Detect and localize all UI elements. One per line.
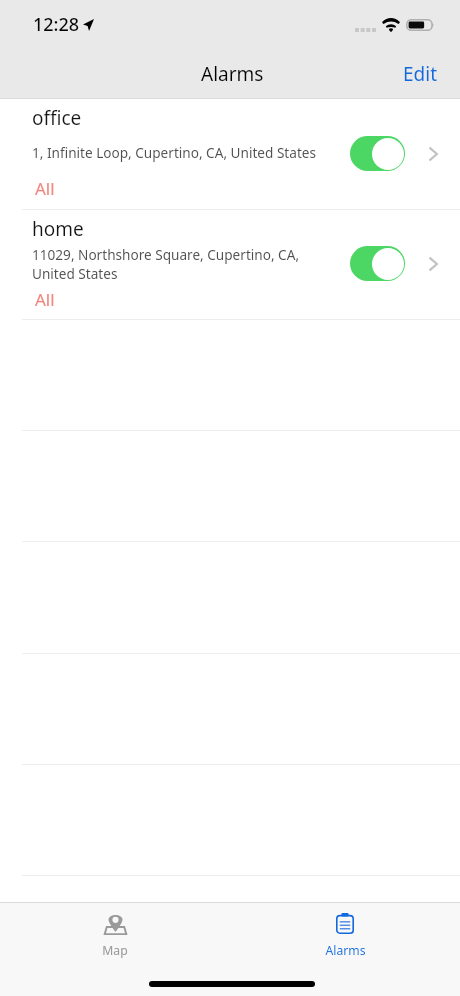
button[interactable]: Alarms: [289, 902, 399, 964]
staticText: All: [35, 288, 55, 311]
staticText: 1, Infinite Loop, Cupertino, CA, United …: [32, 143, 316, 162]
staticText: 11029, Northshore Square, Cupertino, CA,: [32, 245, 300, 264]
button[interactable]: Map: [59, 902, 169, 964]
staticText: home: [32, 216, 84, 242]
staticText: 12:28: [33, 12, 80, 37]
staticText: United States: [32, 264, 118, 283]
button[interactable]: Toggle alarm: [350, 246, 405, 281]
staticText: Alarms: [325, 942, 366, 959]
staticText: Map: [102, 942, 128, 959]
button[interactable]: home: [0, 209, 460, 319]
button[interactable]: Edit: [381, 50, 460, 98]
button[interactable]: Toggle alarm: [350, 136, 405, 171]
staticText: office: [32, 105, 82, 131]
staticText: Alarms: [201, 61, 264, 87]
button[interactable]: [0, 875, 460, 902]
button[interactable]: Open details: [420, 134, 460, 174]
staticText: All: [35, 177, 55, 200]
button[interactable]: office: [0, 99, 460, 209]
staticText: Edit: [403, 61, 438, 87]
button[interactable]: Open details: [420, 244, 460, 284]
